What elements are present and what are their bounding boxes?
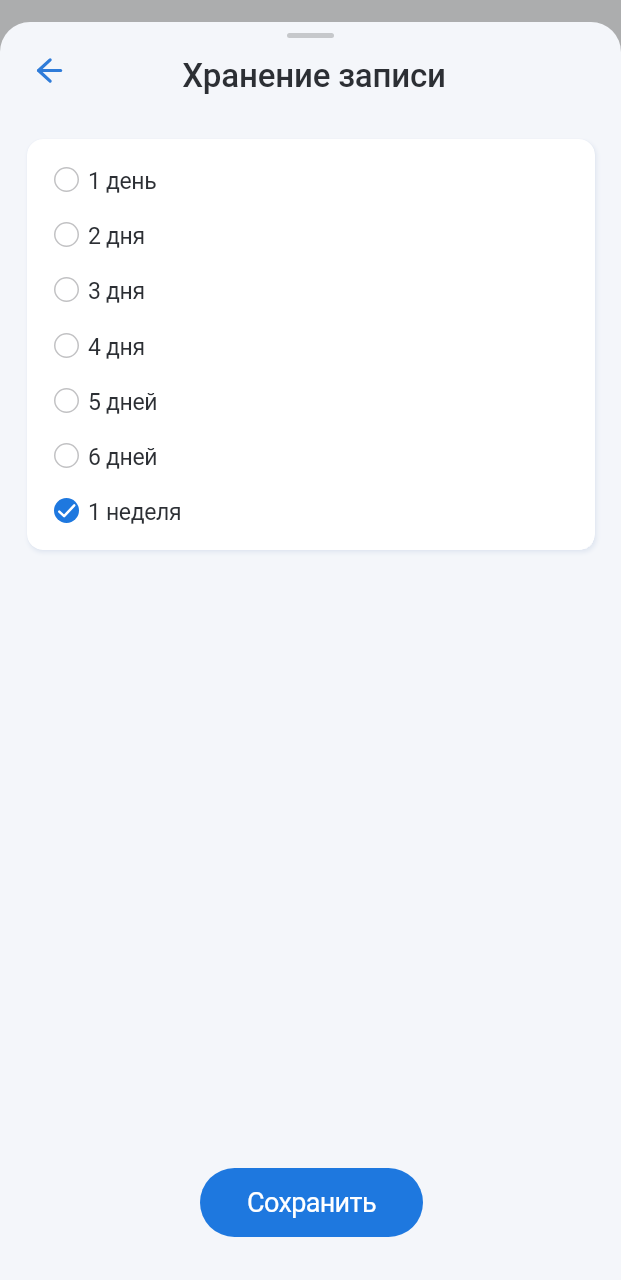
staticText: Сохранить [247,1187,376,1219]
staticText: 2 дня [88,223,145,250]
button[interactable]: 5 дней [27,373,595,428]
staticText: 1 день [88,168,157,195]
staticText: 5 дней [88,389,158,416]
button[interactable]: 2 дня [27,207,595,262]
button[interactable]: Back [25,46,73,94]
staticText: Хранение записи [182,56,446,95]
staticText: 1 неделя [88,499,182,526]
button[interactable]: Сохранить [200,1168,423,1237]
staticText: 6 дней [88,444,158,471]
button[interactable]: 6 дней [27,428,595,483]
button[interactable]: 1 день [27,152,595,207]
button[interactable]: 3 дня [27,262,595,317]
staticText: 3 дня [88,278,145,305]
button[interactable]: 4 дня [27,318,595,373]
staticText: 4 дня [88,334,145,361]
button[interactable]: 1 неделя [27,483,595,538]
